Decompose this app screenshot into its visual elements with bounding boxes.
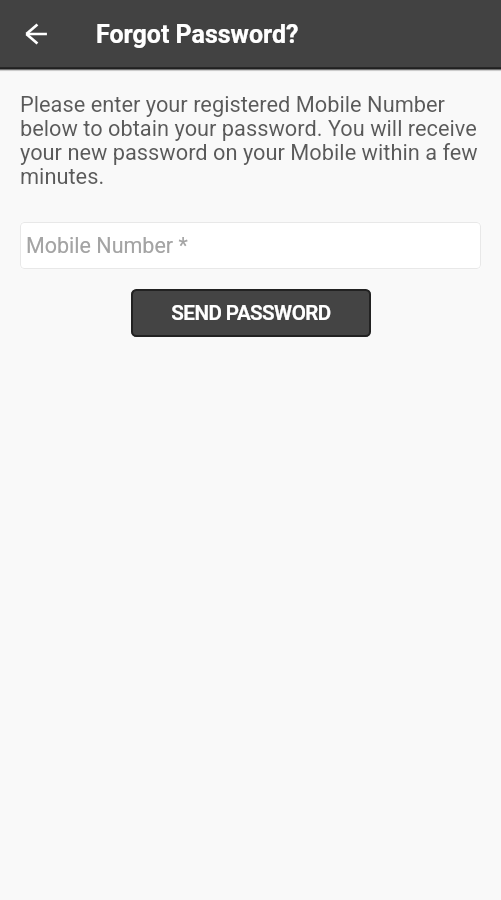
button[interactable]: SEND PASSWORD xyxy=(131,289,371,337)
staticText: SEND PASSWORD xyxy=(171,301,331,325)
staticText: Mobile Number * xyxy=(26,233,188,258)
button[interactable]: Back xyxy=(12,10,60,58)
staticText: Forgot Password? xyxy=(96,20,299,49)
staticText: Please enter your registered Mobile Numb… xyxy=(20,93,481,189)
button[interactable]: Mobile Number * xyxy=(20,222,481,269)
